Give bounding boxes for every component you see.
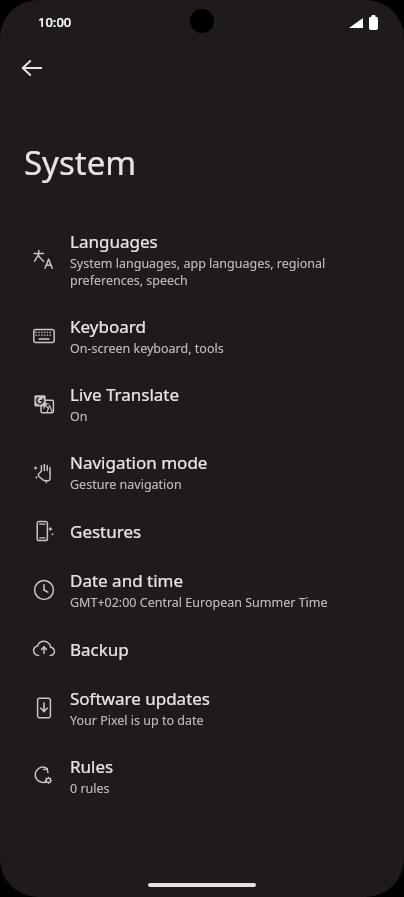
staticText: Gestures bbox=[70, 520, 142, 543]
staticText: Your Pixel is up to date bbox=[70, 712, 204, 729]
button[interactable]: Backup bbox=[0, 624, 404, 674]
button[interactable]: Live Translate bbox=[0, 370, 404, 438]
staticText: System bbox=[24, 140, 137, 185]
staticText: Live Translate bbox=[70, 383, 180, 406]
staticText: Gesture navigation bbox=[70, 476, 182, 493]
staticText: Date and time bbox=[70, 569, 184, 592]
staticText: Backup bbox=[70, 638, 129, 661]
staticText: On bbox=[70, 408, 88, 425]
staticText: Keyboard bbox=[70, 315, 146, 338]
button[interactable]: Gestures bbox=[0, 506, 404, 556]
button[interactable]: Languages bbox=[0, 217, 404, 302]
staticText: Languages bbox=[70, 230, 158, 253]
button[interactable]: Navigation mode bbox=[0, 438, 404, 506]
staticText: Rules bbox=[70, 755, 114, 778]
staticText: Navigation mode bbox=[70, 451, 208, 474]
button[interactable]: Date and time bbox=[0, 556, 404, 624]
button[interactable]: Software updates bbox=[0, 674, 404, 742]
staticText: System languages, app languages, regiona… bbox=[70, 255, 326, 289]
staticText: 10:00 bbox=[38, 13, 72, 31]
staticText: Software updates bbox=[70, 687, 211, 710]
staticText: On-screen keyboard, tools bbox=[70, 340, 224, 357]
button[interactable]: Keyboard bbox=[0, 302, 404, 370]
staticText: GMT+02:00 Central European Summer Time bbox=[70, 594, 328, 611]
button[interactable]: Back bbox=[8, 44, 56, 92]
staticText: 0 rules bbox=[70, 780, 110, 797]
button[interactable]: Rules bbox=[0, 742, 404, 810]
